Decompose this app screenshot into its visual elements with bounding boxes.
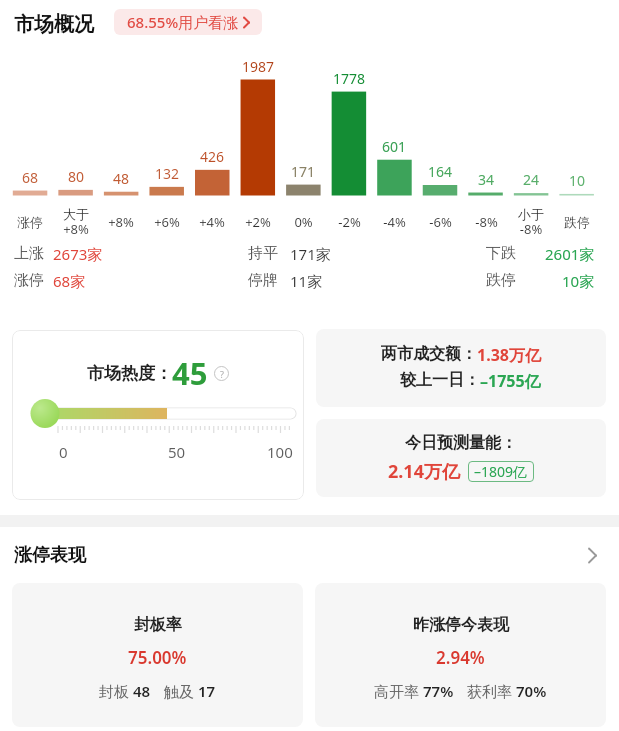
staticText: 48 — [133, 681, 151, 701]
staticText: 68 — [22, 168, 39, 186]
staticText: 封板 — [99, 681, 133, 701]
staticText: 171 — [291, 162, 316, 180]
staticText: 1987 — [242, 57, 275, 75]
staticText: 涨停 — [17, 214, 43, 230]
staticText: 1.38万亿 — [477, 344, 541, 366]
staticText: 跌停 — [486, 271, 516, 290]
staticText: 两市成交额： — [381, 344, 477, 364]
staticText: 停牌 — [248, 271, 278, 290]
staticText: +2% — [245, 213, 271, 231]
staticText: 10家 — [562, 271, 595, 291]
staticText: 68家 — [53, 271, 86, 291]
staticText: -2% — [338, 213, 361, 231]
staticText: 77% — [423, 681, 454, 701]
staticText: 164 — [428, 162, 453, 180]
staticText: 市场概况 — [14, 12, 94, 37]
staticText: 601 — [382, 137, 407, 155]
button[interactable]: 昨涨停今表现 — [315, 583, 606, 727]
staticText: +8% — [108, 213, 134, 231]
staticText: 今日预测量能： — [405, 433, 517, 453]
button[interactable]: 两市成交额： — [316, 329, 606, 407]
staticText: 涨停 — [14, 271, 44, 290]
staticText: ? — [220, 368, 224, 380]
staticText: +6% — [154, 213, 180, 231]
staticText: 426 — [200, 147, 225, 165]
staticText: 跌停 — [564, 214, 590, 230]
staticText: 触及 — [164, 681, 198, 701]
staticText: 75.00% — [128, 646, 187, 669]
staticText: 市场热度： — [87, 363, 172, 384]
staticText: 高开率 — [374, 681, 423, 701]
button[interactable] — [580, 544, 604, 566]
staticText: 1778 — [333, 69, 366, 87]
staticText: 34 — [478, 170, 495, 188]
staticText: 171家 — [290, 244, 331, 264]
staticText: -8% — [475, 213, 498, 231]
staticText: 涨停表现 — [14, 544, 86, 567]
staticText: 持平 — [248, 244, 278, 263]
staticText: 0 — [59, 442, 68, 462]
staticText: 0% — [294, 213, 313, 231]
staticText: 上涨 — [14, 244, 44, 263]
staticText: 小于 -8% — [518, 206, 544, 238]
staticText: 2601家 — [545, 244, 595, 264]
staticText: 68.55%用户看涨 — [127, 12, 239, 32]
staticText: -6% — [429, 213, 452, 231]
staticText: 下跌 — [486, 244, 516, 263]
staticText: 2.94% — [436, 646, 485, 669]
staticText: 10 — [569, 171, 586, 189]
staticText: 获利率 — [467, 681, 516, 701]
staticText: 2673家 — [53, 244, 103, 264]
button[interactable]: 今日预测量能： — [316, 419, 606, 497]
button[interactable]: 市场热度： — [12, 330, 304, 500]
staticText: 昨涨停今表现 — [413, 615, 509, 635]
staticText: –1755亿 — [480, 370, 541, 392]
staticText: 11家 — [290, 271, 323, 291]
staticText: 24 — [523, 170, 540, 188]
staticText: +4% — [199, 213, 225, 231]
staticText: 45 — [172, 352, 208, 394]
staticText: 80 — [68, 167, 85, 185]
staticText: 较上一日： — [400, 370, 480, 390]
staticText: 70% — [516, 681, 547, 701]
staticText: –1809亿 — [474, 462, 528, 481]
staticText: 大于 +8% — [63, 206, 89, 238]
staticText: 封板率 — [134, 615, 182, 635]
staticText: -4% — [383, 213, 406, 231]
staticText: 132 — [155, 164, 180, 182]
button[interactable]: 68.55%用户看涨 — [114, 9, 262, 35]
staticText: 48 — [113, 169, 130, 187]
staticText: 17 — [198, 681, 216, 701]
button[interactable]: 封板率 — [12, 583, 303, 727]
staticText: 50 — [168, 442, 186, 462]
staticText: 100 — [267, 442, 293, 462]
staticText: 2.14万亿 — [388, 459, 460, 484]
